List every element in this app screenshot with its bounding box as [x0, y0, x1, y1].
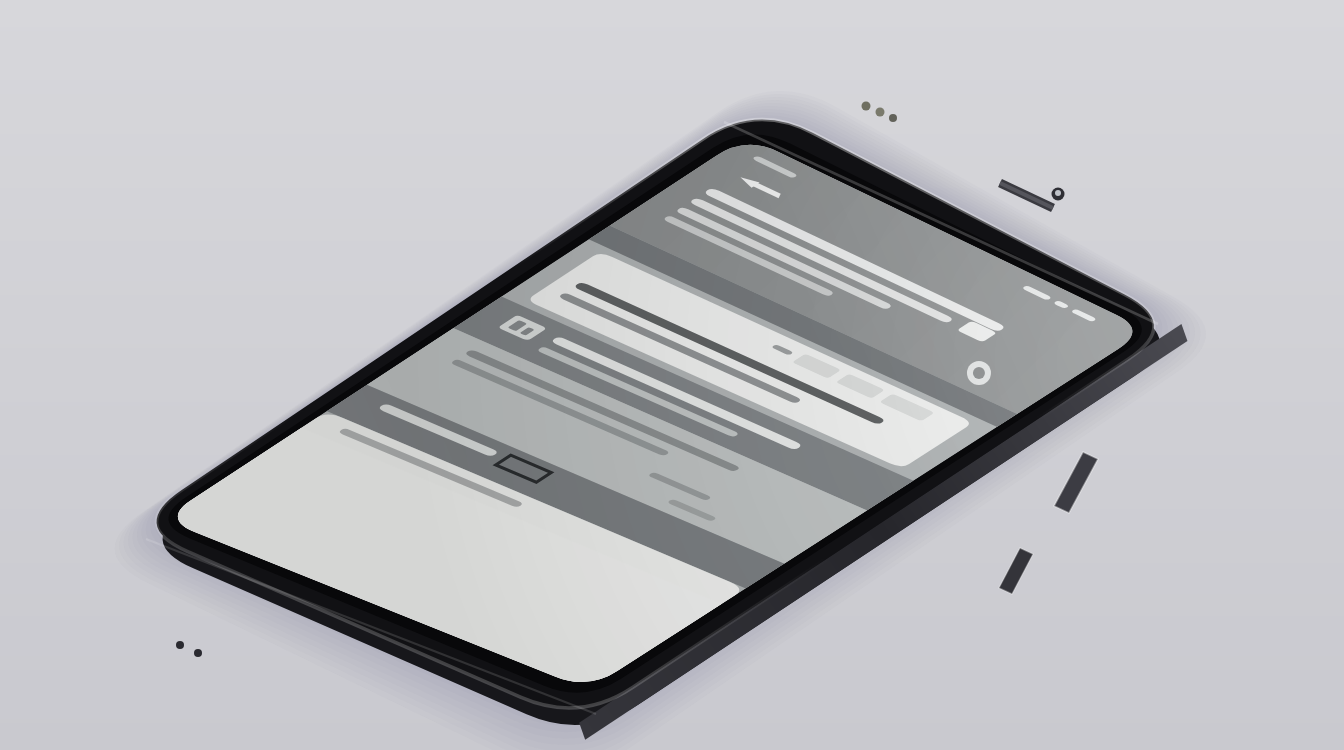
button[interactable]: Phone showing app screen — [0, 0, 1344, 750]
